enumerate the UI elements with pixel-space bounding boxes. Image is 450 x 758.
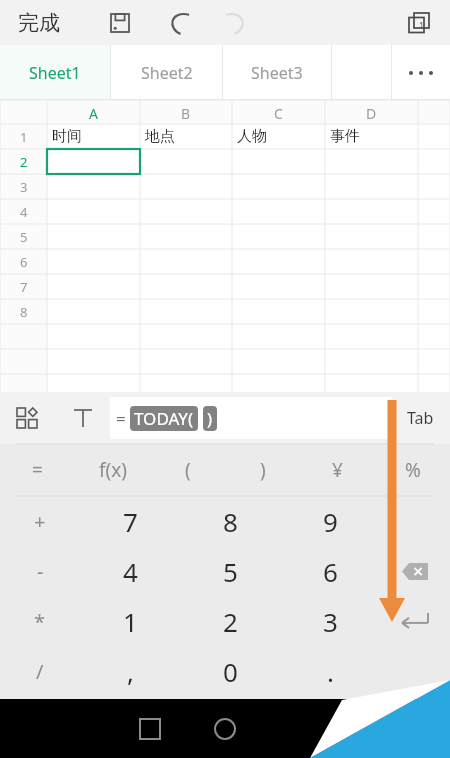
staticText: 9 — [323, 504, 338, 539]
button[interactable]: * — [0, 596, 80, 646]
staticText: 3 — [323, 604, 338, 639]
staticText: 2 — [223, 604, 238, 639]
staticText: 7 — [123, 504, 138, 539]
button[interactable]: + — [0, 496, 80, 546]
button[interactable]: Home — [203, 707, 247, 751]
staticText: f(x) — [99, 457, 127, 483]
button[interactable]: f(x) — [75, 444, 150, 496]
button[interactable]: Insert object — [8, 399, 46, 437]
staticText: Tab — [407, 407, 434, 429]
button[interactable]: = — [110, 397, 392, 439]
button[interactable] — [380, 496, 450, 546]
staticText: B — [181, 104, 191, 123]
staticText: 事件 — [330, 127, 360, 146]
staticText: * — [34, 608, 46, 635]
staticText: - — [37, 558, 44, 585]
staticText: ( — [185, 457, 191, 483]
staticText: 人物 — [237, 127, 267, 146]
staticText: 完成 — [18, 10, 60, 36]
button[interactable] — [380, 646, 450, 696]
staticText: C — [274, 104, 283, 123]
staticText: 6 — [20, 253, 28, 271]
button[interactable]: Backspace — [380, 546, 450, 596]
staticText: 3 — [20, 178, 28, 196]
staticText: ) — [260, 457, 266, 483]
staticText: 1 — [20, 128, 28, 146]
staticText: , — [127, 654, 134, 689]
staticText: 4 — [123, 554, 138, 589]
staticText: ) — [207, 407, 213, 430]
button[interactable]: 9 — [280, 496, 380, 546]
staticText: 5 — [20, 228, 28, 246]
staticText: 8 — [223, 504, 238, 539]
button[interactable]: Text format — [66, 401, 100, 435]
staticText: 1 — [419, 19, 425, 31]
staticText: D — [366, 104, 377, 123]
staticText: 地点 — [145, 127, 175, 146]
staticText: = — [116, 407, 126, 430]
staticText: / — [36, 658, 44, 685]
staticText: 7 — [20, 278, 28, 296]
staticText: Sheet2 — [141, 62, 193, 84]
button[interactable]: ) — [225, 444, 300, 496]
button[interactable]: 6 — [280, 546, 380, 596]
staticText: % — [405, 457, 421, 483]
staticText: 5 — [223, 554, 238, 589]
button[interactable]: ¥ — [300, 444, 375, 496]
button[interactable]: 2 — [180, 596, 280, 646]
button[interactable]: , — [80, 646, 180, 696]
staticText: 6 — [323, 554, 338, 589]
staticText: 时间 — [52, 127, 82, 146]
button[interactable]: Tab — [401, 401, 440, 435]
staticText: 4 — [20, 203, 28, 221]
button[interactable]: More — [392, 45, 450, 100]
staticText: 8 — [20, 303, 28, 321]
button[interactable]: - — [0, 546, 80, 596]
button[interactable]: 完成 — [12, 4, 66, 42]
button[interactable]: Sheet2 — [111, 45, 222, 100]
button[interactable]: 7 — [80, 496, 180, 546]
staticText: A — [89, 104, 98, 123]
button[interactable]: Save — [102, 5, 138, 41]
button[interactable]: 0 — [180, 646, 280, 696]
button[interactable]: ( — [150, 444, 225, 496]
button[interactable]: Redo — [215, 3, 255, 43]
staticText: TODAY( — [134, 407, 194, 430]
staticText: 2 — [20, 153, 28, 171]
button[interactable]: Sheet1 — [0, 45, 110, 100]
button[interactable]: Undo — [160, 3, 200, 43]
staticText: ¥ — [332, 457, 343, 483]
button[interactable]: 3 — [280, 596, 380, 646]
staticText: Sheet1 — [29, 62, 81, 84]
staticText: 0 — [223, 654, 238, 689]
button[interactable]: Sheet list — [402, 6, 436, 40]
button[interactable]: = — [0, 444, 75, 496]
button[interactable]: % — [375, 444, 450, 496]
button[interactable]: Recents — [128, 707, 172, 751]
button[interactable]: 4 — [80, 546, 180, 596]
button[interactable]: 5 — [180, 546, 280, 596]
button[interactable]: Enter — [380, 596, 450, 646]
staticText: 1 — [123, 604, 138, 639]
staticText: + — [34, 508, 46, 535]
button[interactable]: . — [280, 646, 380, 696]
staticText: Sheet3 — [251, 62, 303, 84]
staticText: . — [327, 654, 334, 689]
button[interactable]: 1 — [80, 596, 180, 646]
staticText: = — [32, 457, 43, 483]
button[interactable]: Sheet3 — [223, 45, 331, 100]
button[interactable]: 8 — [180, 496, 280, 546]
button[interactable]: / — [0, 646, 80, 696]
